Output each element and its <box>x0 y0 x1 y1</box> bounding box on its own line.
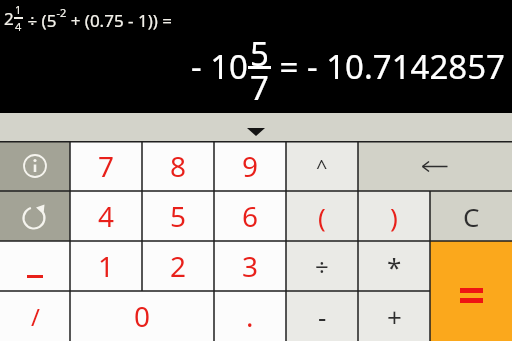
button[interactable]: 3 <box>214 241 286 291</box>
button[interactable]: / <box>0 291 70 341</box>
staticText: ÷ (5-2 + (0.75 - 1)) = <box>23 5 172 32</box>
staticText: 2 <box>4 7 14 30</box>
staticText: C <box>463 199 480 234</box>
button[interactable] <box>0 241 70 291</box>
staticText: 8 <box>170 147 187 185</box>
staticText: ÷ <box>315 250 329 283</box>
staticText: ( <box>318 199 326 234</box>
staticText: 7 <box>250 65 269 110</box>
staticText: 6 <box>242 197 259 235</box>
button[interactable]: 2 <box>142 241 214 291</box>
button[interactable]: C <box>430 191 512 241</box>
staticText: - 10 <box>191 44 248 89</box>
button[interactable]: - <box>286 291 358 341</box>
staticText: . <box>246 297 254 335</box>
staticText: 2 <box>170 247 187 285</box>
button[interactable]: * <box>358 241 430 291</box>
staticText: 5 <box>170 197 187 235</box>
staticText: 4 <box>15 19 22 34</box>
staticText: 1 <box>15 2 22 17</box>
button[interactable] <box>358 141 512 191</box>
button[interactable]: ÷ <box>286 241 358 291</box>
staticText: 9 <box>242 147 259 185</box>
staticText: ) <box>390 199 398 234</box>
staticText: 4 <box>98 197 115 235</box>
staticText: 1 <box>98 247 115 285</box>
button[interactable]: ^ <box>286 141 358 191</box>
staticText: 3 <box>242 247 259 285</box>
button[interactable] <box>0 113 512 141</box>
staticText: ^ <box>316 153 328 180</box>
button[interactable]: 9 <box>214 141 286 191</box>
button[interactable] <box>0 141 70 191</box>
button[interactable]: ( <box>286 191 358 241</box>
button[interactable]: 4 <box>70 191 142 241</box>
staticText: * <box>387 249 402 284</box>
staticText: / <box>31 300 40 333</box>
button[interactable]: 0 <box>70 291 214 341</box>
button[interactable]: 5 <box>142 191 214 241</box>
button[interactable]: + <box>358 291 430 341</box>
button[interactable]: 1 <box>70 241 142 291</box>
staticText: 0 <box>134 297 151 335</box>
button[interactable] <box>430 241 512 341</box>
button[interactable]: 6 <box>214 191 286 241</box>
button[interactable]: . <box>214 291 286 341</box>
staticText: 7 <box>98 147 115 185</box>
button[interactable]: 7 <box>70 141 142 191</box>
staticText: - <box>318 299 327 334</box>
staticText: 5 <box>250 31 269 76</box>
staticText: + <box>387 299 402 334</box>
button[interactable]: ) <box>358 191 430 241</box>
button[interactable]: 8 <box>142 141 214 191</box>
staticText: = - 10.7142857 <box>271 44 505 89</box>
button[interactable] <box>0 191 70 241</box>
